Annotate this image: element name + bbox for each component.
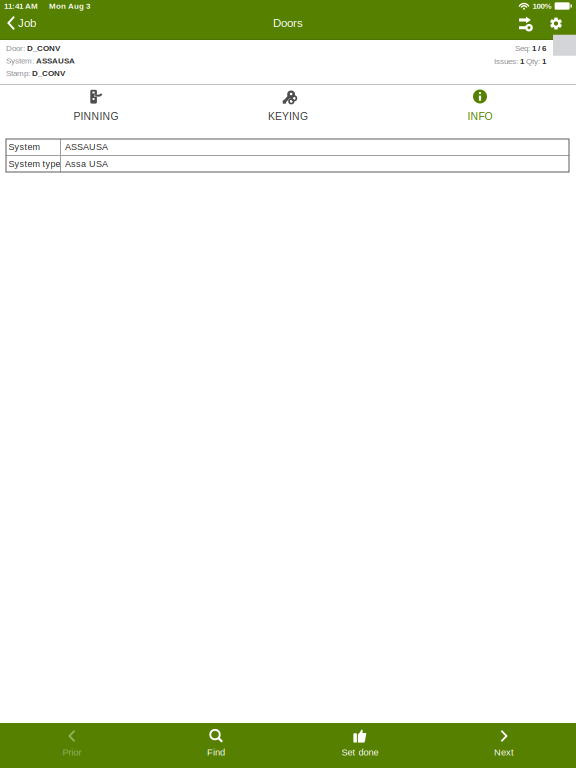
staticText: D_CONV (32, 69, 65, 78)
staticText: INFO (467, 110, 492, 122)
button[interactable]: Next (432, 723, 576, 768)
staticText: System (8, 142, 39, 152)
button[interactable]: PINNING (0, 85, 192, 130)
staticText: Mon Aug 3 (49, 1, 90, 10)
staticText: 1 (542, 57, 546, 66)
staticText: ASSAUSA (65, 142, 108, 152)
staticText: Set done (341, 747, 378, 757)
staticText: Stamp: (6, 69, 32, 78)
button[interactable]: Set done (288, 723, 432, 768)
button[interactable]: Transfer keys (511, 11, 541, 35)
button[interactable]: Job (0, 11, 42, 35)
staticText: 1 / 6 (532, 44, 546, 53)
button[interactable]: INFO (384, 85, 576, 130)
staticText: 1 (520, 57, 524, 66)
staticText: 100% (532, 1, 551, 10)
staticText: Assa USA (65, 159, 108, 169)
button[interactable]: Prior (0, 723, 144, 768)
button[interactable]: KEYING (192, 85, 384, 130)
staticText: D_CONV (27, 44, 60, 53)
button[interactable]: Find (144, 723, 288, 768)
staticText: 11:41 AM (4, 1, 38, 10)
staticText: Find (207, 747, 225, 757)
staticText: Job (18, 17, 36, 29)
staticText: System: (6, 56, 36, 65)
staticText: Door: (6, 44, 27, 53)
staticText: System type (8, 159, 60, 169)
staticText: Next (494, 747, 514, 757)
staticText: Qty: (524, 57, 542, 66)
staticText: PINNING (73, 110, 118, 122)
button[interactable]: Settings (541, 11, 571, 35)
staticText: Issues: (494, 57, 520, 66)
staticText: Seq: (515, 44, 532, 53)
staticText: KEYING (268, 110, 308, 122)
staticText: ASSAUSA (36, 56, 75, 65)
staticText: Prior (62, 747, 81, 757)
staticText: Doors (273, 17, 303, 29)
